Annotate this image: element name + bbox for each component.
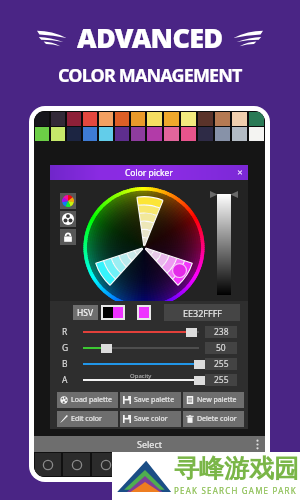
button[interactable]: Delete color xyxy=(183,411,244,427)
button[interactable] xyxy=(249,112,264,126)
staticText: Save palette xyxy=(134,395,175,405)
staticText: Delete color xyxy=(197,414,237,424)
staticText: R xyxy=(62,326,68,338)
button[interactable]: Load palette xyxy=(57,392,118,408)
button[interactable]: New palette xyxy=(183,392,244,408)
staticText: Color picker xyxy=(125,167,173,179)
staticText: Load palette xyxy=(71,395,112,405)
other: More options xyxy=(256,439,259,450)
staticText: 50 xyxy=(216,342,226,354)
button[interactable]: Edit color xyxy=(57,411,118,427)
staticText: 寻峰游戏园 xyxy=(174,453,299,484)
button[interactable] xyxy=(35,112,49,126)
button[interactable]: Tool 7 xyxy=(208,453,235,476)
staticText: New palette xyxy=(197,395,237,405)
staticText: 255 xyxy=(214,374,229,386)
button[interactable]: Color wheel xyxy=(60,193,76,209)
button[interactable]: Tool 4 xyxy=(121,453,148,476)
staticText: Opacity xyxy=(130,372,152,380)
button[interactable]: Harmony xyxy=(60,211,76,227)
button[interactable]: Save palette xyxy=(120,392,181,408)
button[interactable]: Tool 5 xyxy=(150,453,177,476)
staticText: B xyxy=(62,358,68,370)
staticText: Save color xyxy=(134,414,168,424)
staticText: A xyxy=(62,374,68,386)
button[interactable]: B xyxy=(83,356,199,372)
button[interactable]: HSV xyxy=(73,305,98,320)
button[interactable]: Previous colour xyxy=(103,307,123,318)
staticText: ADVANCED xyxy=(77,19,223,56)
staticText: COLOR MANAGEMENT xyxy=(58,63,242,88)
staticText: 238 xyxy=(214,326,229,338)
button[interactable]: Lock xyxy=(60,229,76,245)
button[interactable]: EE32FFFF xyxy=(164,304,240,321)
staticText: HSV xyxy=(77,307,94,319)
button[interactable]: Tool 3 xyxy=(92,453,119,476)
button[interactable]: Tool 1 xyxy=(35,453,61,476)
staticText: Select xyxy=(137,438,162,450)
button[interactable]: ✕ xyxy=(237,169,243,177)
button[interactable]: Tool 6 xyxy=(179,453,206,476)
button[interactable]: Tool 8 xyxy=(237,453,264,476)
button[interactable]: A xyxy=(83,372,199,388)
staticText: EE32FFFF xyxy=(183,307,222,319)
staticText: PEAK SEARCH GAME PARK xyxy=(174,485,297,496)
button[interactable]: Value xyxy=(217,194,231,295)
staticText: Edit color xyxy=(71,414,102,424)
button[interactable]: Tool 2 xyxy=(63,453,90,476)
button[interactable]: Select xyxy=(34,436,265,452)
staticText: 255 xyxy=(214,358,229,370)
button[interactable]: G xyxy=(83,340,199,356)
staticText: G xyxy=(62,342,69,354)
button[interactable]: R xyxy=(83,324,199,340)
button[interactable]: Save color xyxy=(120,411,181,427)
